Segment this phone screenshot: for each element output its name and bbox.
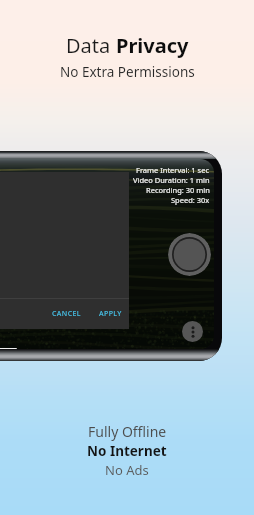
button[interactable]: CANCEL: [46, 304, 87, 324]
staticText: Speed: 30x: [171, 195, 210, 205]
staticText: No Ads: [105, 461, 149, 479]
staticText: Data: [66, 32, 116, 59]
button[interactable]: Start recording: [168, 233, 211, 276]
staticText: No Internet: [87, 442, 167, 460]
staticText: CANCEL: [52, 309, 81, 319]
staticText: APPLY: [99, 309, 122, 319]
staticText: Recording: 30 min: [146, 185, 210, 195]
button[interactable]: APPLY: [93, 304, 128, 324]
staticText: Privacy: [116, 32, 189, 59]
staticText: Fully Offline: [88, 422, 167, 441]
staticText: Video Duration: 1 min: [133, 175, 210, 185]
staticText: No Extra Permissions: [60, 63, 195, 81]
button[interactable]: More options: [182, 321, 203, 342]
staticText: Frame Interval: 1 sec: [136, 165, 210, 175]
